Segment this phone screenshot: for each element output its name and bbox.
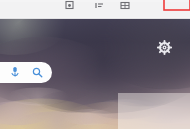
button[interactable]: Settings bbox=[157, 40, 172, 55]
button[interactable]: Search bbox=[0, 62, 52, 83]
